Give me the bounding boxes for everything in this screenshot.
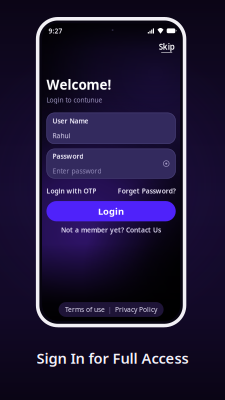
staticText: Login bbox=[98, 205, 124, 217]
staticText: Password bbox=[52, 152, 83, 161]
staticText: User Name bbox=[52, 116, 88, 125]
button[interactable]: Privacy Policy bbox=[115, 305, 157, 314]
button[interactable]: Skip bbox=[156, 39, 177, 55]
staticText: Enter password bbox=[52, 167, 101, 175]
staticText: | bbox=[108, 305, 112, 314]
button[interactable]: Login bbox=[46, 201, 176, 221]
staticText: Sign In for Full Access bbox=[36, 348, 188, 368]
button[interactable]: Terms of use bbox=[65, 305, 105, 314]
staticText: Privacy Policy bbox=[115, 305, 157, 314]
button[interactable]: Login with OTP bbox=[46, 187, 96, 195]
staticText: Rahul bbox=[52, 131, 70, 140]
staticText: Terms of use bbox=[65, 305, 105, 314]
button[interactable]: Not a member yet? Contact Us bbox=[59, 224, 163, 236]
staticText: Login with OTP bbox=[46, 187, 96, 195]
staticText: 9:27 bbox=[48, 26, 62, 35]
staticText: Welcome! bbox=[46, 76, 111, 93]
staticText: Login to contunue bbox=[46, 95, 102, 104]
button[interactable]: Forget Password? bbox=[118, 187, 176, 195]
staticText: Skip bbox=[159, 41, 175, 52]
staticText: Not a member yet? Contact Us bbox=[61, 226, 161, 234]
staticText: Forget Password? bbox=[118, 187, 176, 195]
